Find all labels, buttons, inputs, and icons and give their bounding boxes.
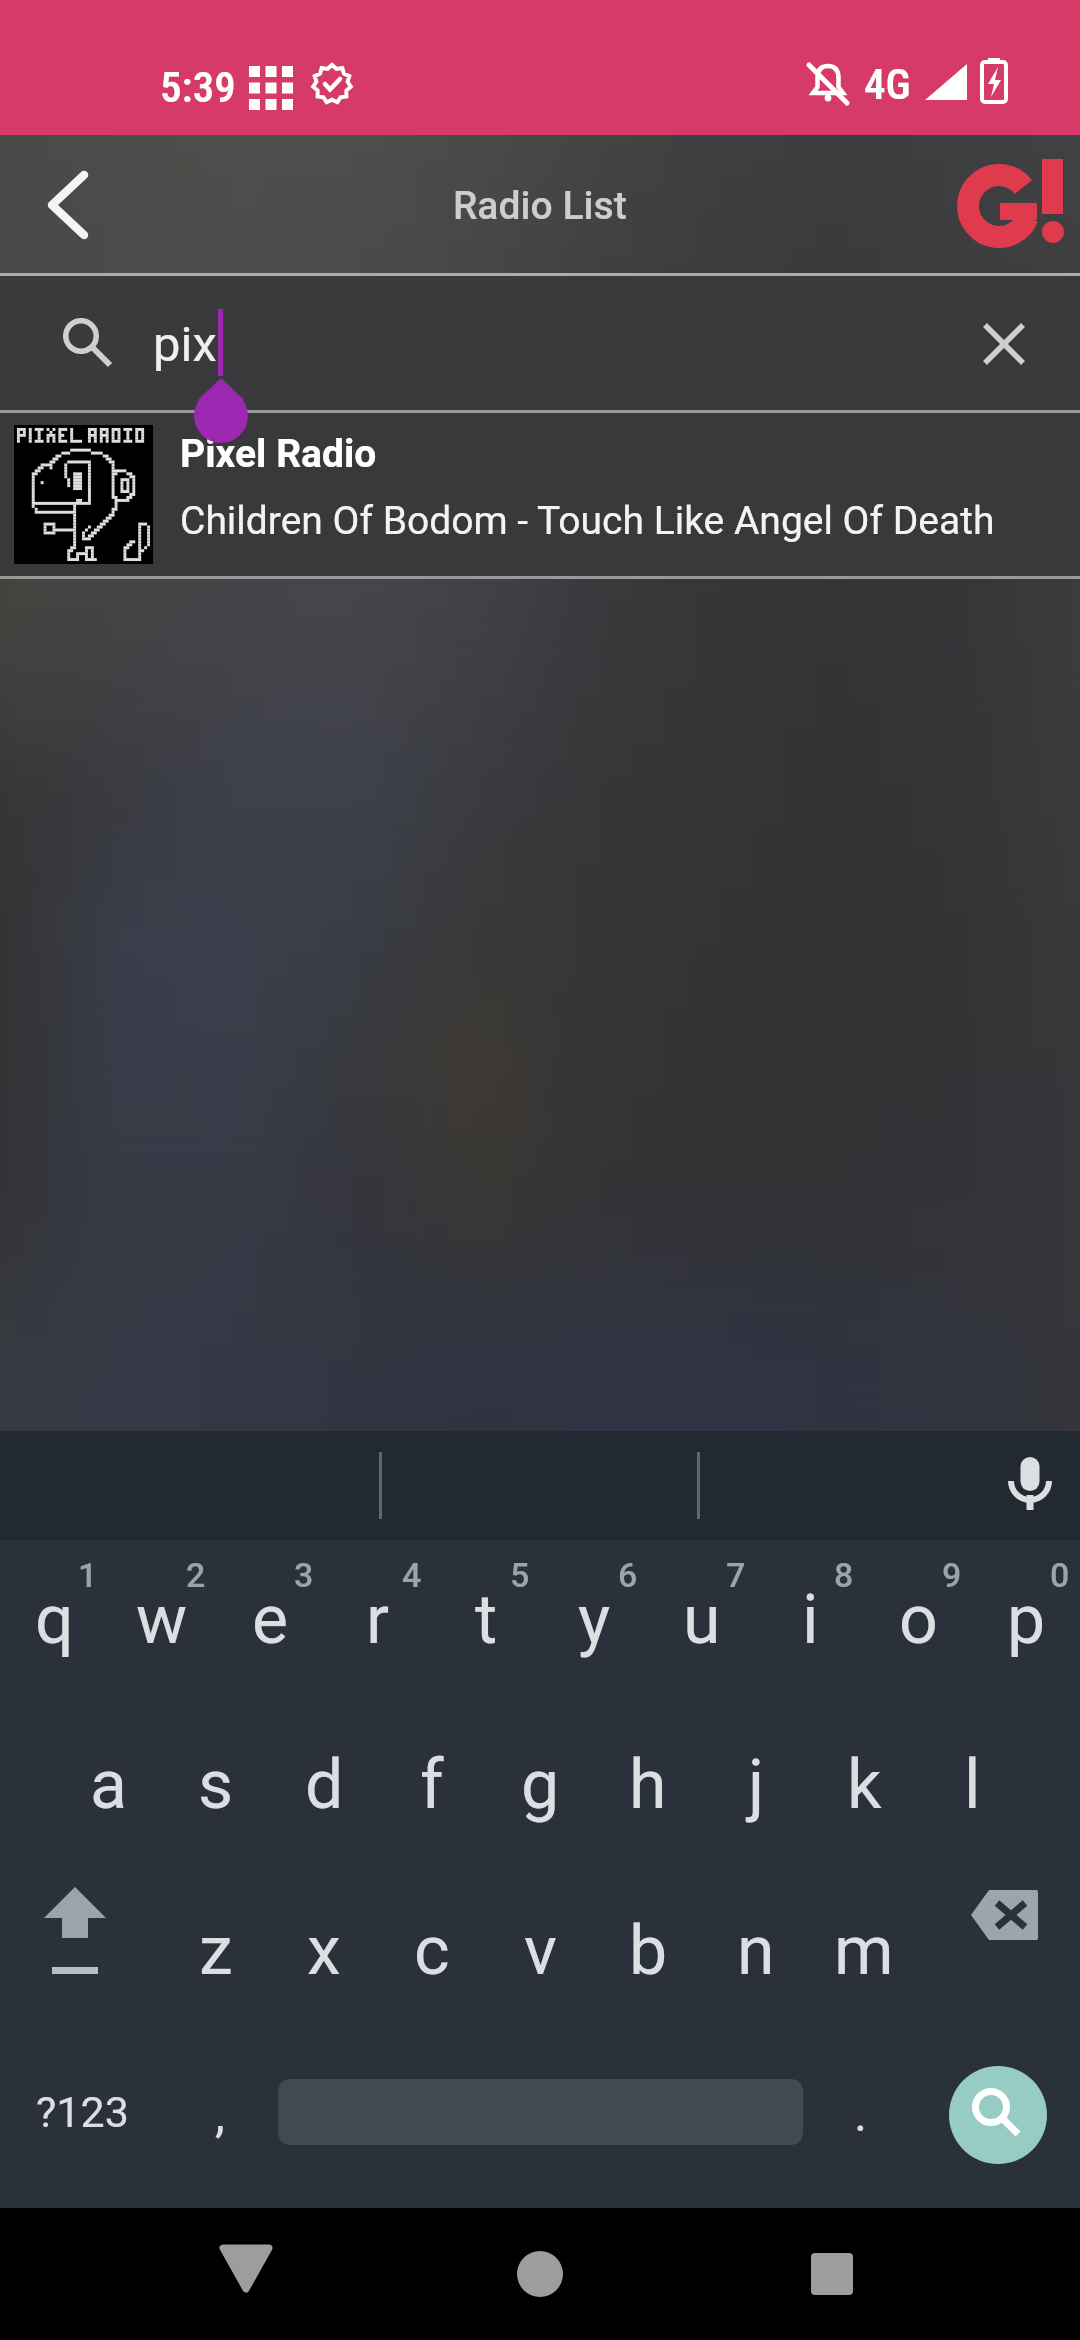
staticText: k: [847, 1745, 882, 1825]
button[interactable]: s: [162, 1707, 270, 1874]
staticText: c: [414, 1911, 450, 1991]
button[interactable]: h: [594, 1707, 702, 1874]
button[interactable]: f: [378, 1707, 486, 1874]
staticText: g: [521, 1745, 560, 1825]
button[interactable]: Back: [200, 2228, 292, 2320]
staticText: 5: [510, 1555, 530, 1595]
button[interactable]: k: [810, 1707, 918, 1874]
button[interactable]: x: [270, 1874, 378, 2041]
button[interactable]: Gangsta logo: [950, 150, 1070, 260]
staticText: u: [683, 1580, 721, 1660]
staticText: 6: [618, 1555, 638, 1595]
staticText: ?123: [36, 2087, 129, 2137]
button[interactable]: 9: [864, 1540, 972, 1707]
staticText: Pixel Radio: [180, 431, 377, 477]
button[interactable]: Search: [55, 310, 111, 366]
staticText: d: [305, 1745, 344, 1825]
button[interactable]: Home: [494, 2228, 586, 2320]
button[interactable]: 3: [216, 1540, 324, 1707]
button[interactable]: ,: [162, 2041, 278, 2208]
button[interactable]: 7: [648, 1540, 756, 1707]
staticText: e: [252, 1580, 289, 1660]
staticText: a: [90, 1745, 127, 1825]
staticText: w: [136, 1580, 188, 1660]
staticText: f: [420, 1745, 444, 1825]
staticText: p: [1007, 1580, 1046, 1660]
button[interactable]: v: [486, 1874, 594, 2041]
staticText: 9: [942, 1555, 962, 1595]
button[interactable]: j: [702, 1707, 810, 1874]
button[interactable]: d: [270, 1707, 378, 1874]
staticText: ,: [215, 2085, 225, 2144]
staticText: h: [629, 1745, 667, 1825]
button[interactable]: .: [803, 2041, 919, 2208]
staticText: 1: [78, 1555, 98, 1595]
staticText: l: [964, 1745, 981, 1825]
button[interactable]: a: [54, 1707, 162, 1874]
staticText: b: [629, 1911, 668, 1991]
staticText: 2: [186, 1555, 206, 1595]
button[interactable]: n: [702, 1874, 810, 2041]
staticText: z: [199, 1911, 233, 1991]
staticText: y: [578, 1580, 611, 1660]
staticText: .: [854, 2085, 868, 2144]
staticText: v: [524, 1911, 557, 1991]
button[interactable]: Back: [30, 160, 106, 250]
button[interactable]: z: [162, 1874, 270, 2041]
staticText: q: [35, 1580, 74, 1660]
staticText: j: [748, 1745, 765, 1825]
staticText: Children Of Bodom - Touch Like Angel Of …: [180, 498, 995, 544]
button[interactable]: Clear text: [984, 324, 1024, 364]
button[interactable]: Backspace: [918, 1874, 1080, 2041]
staticText: m: [834, 1911, 894, 1991]
staticText: o: [899, 1580, 938, 1660]
button[interactable]: Pixel Radio: [0, 413, 1080, 579]
button[interactable]: 4: [324, 1540, 432, 1707]
button[interactable]: Voice input: [1000, 1455, 1060, 1515]
button[interactable]: 0: [972, 1540, 1080, 1707]
button[interactable]: l: [918, 1707, 1026, 1874]
staticText: 5:39: [160, 62, 236, 112]
staticText: n: [737, 1911, 775, 1991]
staticText: s: [198, 1745, 234, 1825]
staticText: r: [366, 1580, 390, 1660]
staticText: Radio List: [453, 183, 627, 229]
staticText: t: [475, 1580, 498, 1660]
staticText: 7: [726, 1555, 746, 1595]
staticText: 4: [402, 1555, 422, 1595]
button[interactable]: ?123: [0, 2041, 162, 2208]
button[interactable]: g: [486, 1707, 594, 1874]
button[interactable]: Recent apps: [786, 2228, 878, 2320]
staticText: i: [802, 1580, 819, 1660]
button[interactable]: 1: [0, 1540, 108, 1707]
button[interactable]: Search: [949, 2066, 1047, 2164]
button[interactable]: 2: [108, 1540, 216, 1707]
staticText: 8: [834, 1555, 854, 1595]
button[interactable]: 5: [432, 1540, 540, 1707]
staticText: 0: [1050, 1555, 1070, 1595]
staticText: x: [307, 1911, 341, 1991]
staticText: 4G: [864, 59, 911, 109]
staticText: 3: [294, 1555, 314, 1595]
button[interactable]: b: [594, 1874, 702, 2041]
button[interactable]: 6: [540, 1540, 648, 1707]
button[interactable]: c: [378, 1874, 486, 2041]
button[interactable]: m: [810, 1874, 918, 2041]
button[interactable]: 8: [756, 1540, 864, 1707]
staticText: pix: [153, 316, 217, 373]
button[interactable]: Shift: [0, 1874, 162, 2041]
